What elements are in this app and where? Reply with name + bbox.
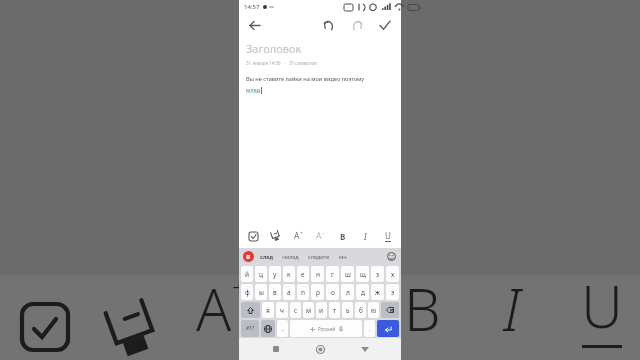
button[interactable]: Back xyxy=(245,16,263,34)
button[interactable]: л xyxy=(341,284,354,300)
button[interactable]: #1? xyxy=(241,320,259,337)
button[interactable]: ф xyxy=(241,284,253,300)
button[interactable]: п xyxy=(297,284,309,300)
staticText: − xyxy=(322,230,325,237)
button[interactable]: о xyxy=(326,284,339,300)
button[interactable]: х xyxy=(386,266,399,282)
button[interactable]: Space xyxy=(290,320,362,337)
staticText: след xyxy=(260,253,273,260)
staticText: х xyxy=(391,270,395,279)
staticText: ш xyxy=(345,270,351,279)
button[interactable]: э xyxy=(386,284,399,300)
staticText: к xyxy=(287,270,291,279)
staticText: B xyxy=(340,231,346,242)
staticText: ж xyxy=(375,288,380,297)
staticText: б xyxy=(359,306,363,315)
staticText: A xyxy=(196,269,232,348)
button[interactable]: ю xyxy=(368,302,379,318)
button[interactable]: ь xyxy=(342,302,353,318)
button[interactable]: мн xyxy=(338,253,348,260)
staticText: в xyxy=(273,288,277,297)
button[interactable]: следите xyxy=(307,253,331,260)
staticText: ю xyxy=(371,306,377,315)
button[interactable]: г xyxy=(326,266,339,282)
staticText: A xyxy=(294,230,300,242)
staticText: л xyxy=(346,288,350,297)
staticText: э xyxy=(391,288,395,297)
staticText: , xyxy=(282,325,284,333)
button[interactable]: е xyxy=(297,266,309,282)
staticText: млед xyxy=(246,86,261,94)
button[interactable]: с xyxy=(290,302,301,318)
staticText: г xyxy=(331,270,334,279)
button[interactable]: б xyxy=(355,302,366,318)
button[interactable]: Emoji xyxy=(386,251,397,262)
button[interactable]: «млед xyxy=(281,253,300,260)
button[interactable]: Italic xyxy=(356,227,374,245)
button[interactable]: ч xyxy=(276,302,288,318)
button[interactable]: к xyxy=(283,266,295,282)
staticText: с xyxy=(294,306,298,315)
button[interactable]: ы xyxy=(255,284,267,300)
button[interactable]: щ xyxy=(356,266,369,282)
button[interactable]: Redo xyxy=(347,15,367,35)
staticText: п xyxy=(301,288,305,297)
button[interactable]: ш xyxy=(341,266,354,282)
staticText: 31 января 14:56 · 37 символов xyxy=(246,60,317,66)
button[interactable]: Increase text size xyxy=(289,227,307,245)
button[interactable]: Keyboard settings xyxy=(243,251,254,262)
staticText: д xyxy=(361,288,365,297)
button[interactable]: ж xyxy=(371,284,384,300)
staticText: т xyxy=(333,306,337,315)
button[interactable]: Bold xyxy=(334,227,352,245)
button[interactable]: Decrease text size xyxy=(311,227,329,245)
button[interactable]: д xyxy=(356,284,369,300)
staticText: #1? xyxy=(246,325,255,332)
button[interactable]: Home xyxy=(312,341,328,357)
staticText: . xyxy=(369,325,371,333)
staticText: й xyxy=(245,270,250,279)
staticText: 14:57 xyxy=(244,3,260,11)
staticText: Я xyxy=(246,253,251,261)
button[interactable]: Underline xyxy=(379,227,397,245)
button[interactable]: т xyxy=(329,302,340,318)
button[interactable]: й xyxy=(241,266,253,282)
staticText: а xyxy=(287,288,291,297)
staticText: Заголовок xyxy=(246,41,302,56)
button[interactable]: Backspace xyxy=(381,302,399,318)
button[interactable]: Change language xyxy=(261,320,275,337)
button[interactable]: . xyxy=(364,320,375,337)
button[interactable]: з xyxy=(371,266,384,282)
button[interactable]: Save xyxy=(375,15,395,35)
staticText: м xyxy=(306,306,311,315)
staticText: + xyxy=(300,230,303,237)
staticText: A xyxy=(316,230,322,242)
button[interactable]: Shift xyxy=(241,302,260,318)
button[interactable]: , xyxy=(277,320,288,337)
staticText: р xyxy=(316,288,320,297)
button[interactable]: Undo xyxy=(319,15,339,35)
button[interactable]: а xyxy=(283,284,295,300)
staticText: B xyxy=(404,269,441,348)
button[interactable]: Enter xyxy=(377,320,399,337)
staticText: з xyxy=(376,270,380,279)
button[interactable]: в xyxy=(269,284,281,300)
button[interactable]: след xyxy=(259,253,274,260)
button[interactable]: р xyxy=(311,284,324,300)
staticText: ф xyxy=(245,288,250,297)
button[interactable]: Recents xyxy=(268,341,284,357)
button[interactable]: Checklist xyxy=(244,227,262,245)
button[interactable]: я xyxy=(262,302,274,318)
button[interactable]: и xyxy=(316,302,327,318)
button[interactable]: н xyxy=(311,266,324,282)
button[interactable]: Highlight xyxy=(266,227,284,245)
button[interactable]: у xyxy=(269,266,281,282)
staticText: ц xyxy=(259,270,263,279)
staticText: мн xyxy=(339,253,347,260)
staticText: е xyxy=(301,270,305,279)
staticText: Русский xyxy=(318,326,336,332)
staticText: I xyxy=(503,269,521,348)
button[interactable]: ц xyxy=(255,266,267,282)
button[interactable]: м xyxy=(303,302,314,318)
button[interactable]: Hide keyboard xyxy=(357,341,373,357)
